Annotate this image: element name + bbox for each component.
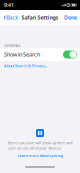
staticText: Safari Settings	[21, 14, 58, 21]
button[interactable]: Back	[0, 10, 20, 25]
staticText: Items you save will show up here and syn…	[8, 140, 72, 151]
staticText: Show in Search	[4, 51, 40, 58]
staticText: Back	[6, 14, 18, 21]
staticText: GENERAL	[4, 43, 21, 48]
staticText: Learn more about syncing	[17, 153, 62, 158]
button[interactable]: Done	[62, 10, 80, 25]
staticText: 9:41	[4, 1, 14, 9]
staticText: Done	[64, 14, 77, 21]
button[interactable]: About Search & Privacy…	[0, 61, 80, 68]
button[interactable]: Show in Search	[0, 48, 80, 61]
button[interactable]: Learn more about syncing	[17, 151, 62, 158]
staticText: About Search & Privacy…	[4, 63, 48, 68]
